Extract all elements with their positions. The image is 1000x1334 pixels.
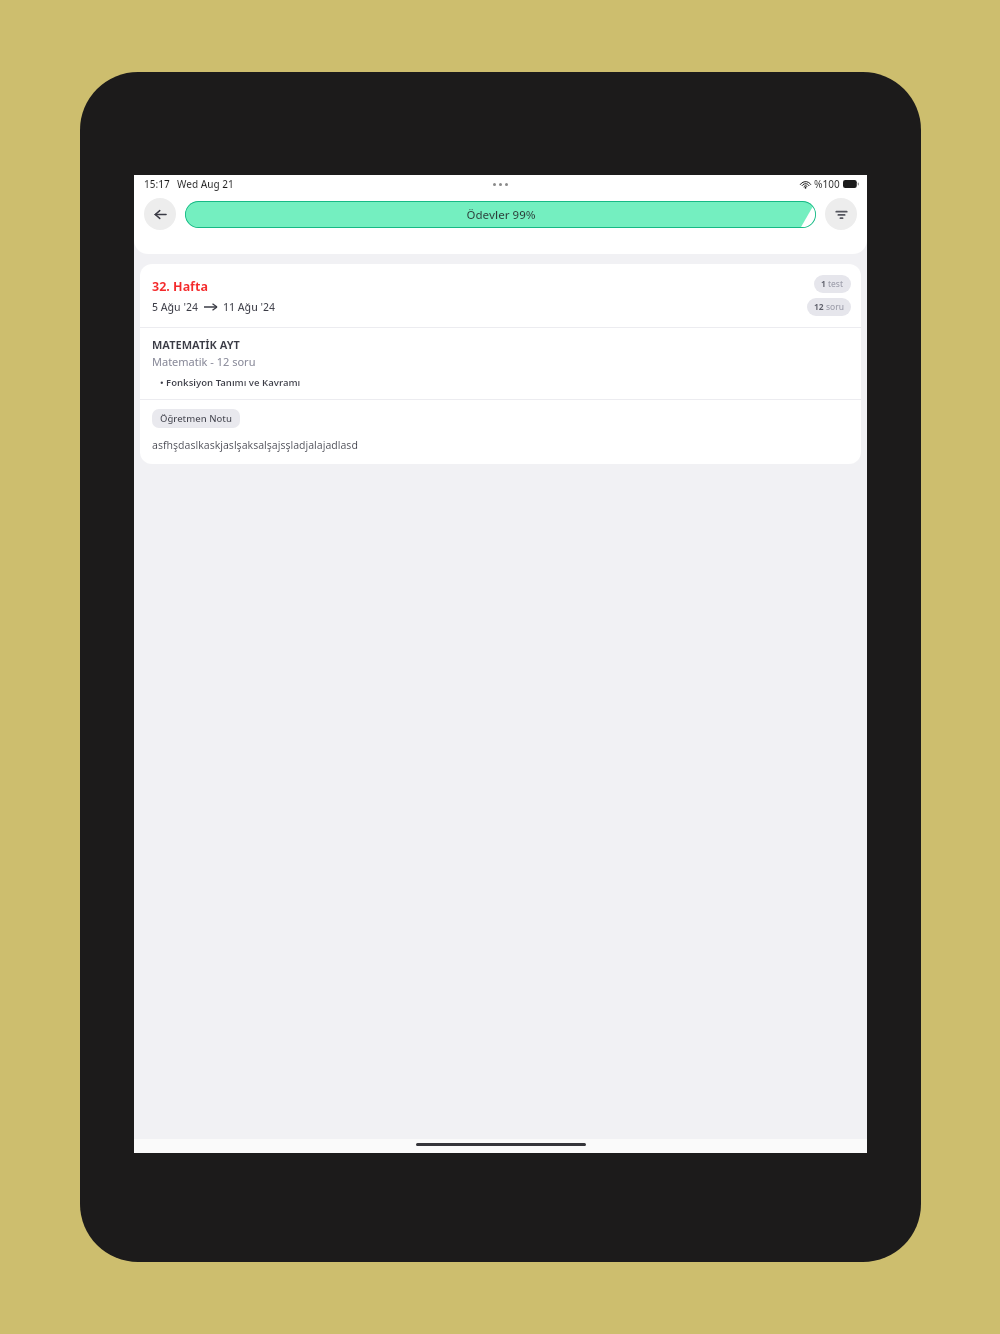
staticText: MATEMATİK AYT	[152, 337, 240, 352]
staticText: 11 Ağu '24	[223, 300, 275, 314]
staticText: 12	[814, 301, 824, 313]
button[interactable]: 32. Hafta	[140, 264, 861, 327]
staticText: %100	[814, 177, 840, 191]
staticText: • Fonksiyon Tanımı ve Kavramı	[160, 376, 301, 389]
staticText: 32. Hafta	[152, 278, 208, 295]
button[interactable]: Ödevler 99%	[185, 201, 816, 228]
staticText: Wed Aug 21	[177, 177, 234, 191]
staticText: test	[828, 278, 844, 290]
staticText: 1	[821, 278, 826, 290]
button[interactable]: Filter	[825, 198, 857, 230]
staticText: soru	[826, 301, 844, 313]
staticText: Matematik - 12 soru	[152, 354, 256, 369]
staticText: 15:17	[144, 177, 170, 191]
staticText: asfhşdaslkaskjaslşaksalşajsşladjalajadla…	[152, 438, 358, 452]
button[interactable]: Öğretmen Notu	[140, 400, 861, 464]
staticText: Ödevler 99%	[466, 207, 536, 223]
button[interactable]: MATEMATİK AYT	[140, 328, 861, 399]
button[interactable]: Back	[144, 198, 176, 230]
staticText: Öğretmen Notu	[160, 412, 232, 425]
staticText: 5 Ağu '24	[152, 300, 198, 314]
